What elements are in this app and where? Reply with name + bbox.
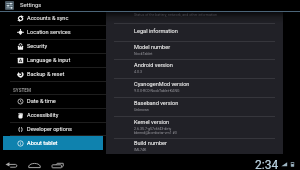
staticText: Developer options xyxy=(27,126,72,133)
button[interactable]: Security xyxy=(3,40,103,53)
button[interactable]: About tablet xyxy=(3,136,103,150)
staticText: Security xyxy=(27,43,48,50)
button[interactable]: CyanogenMod version xyxy=(106,79,283,97)
staticText: Accessibility xyxy=(27,112,59,119)
staticText: Date & time xyxy=(27,98,56,105)
staticText: 9.0.0-RC0-NookTablet-KANG xyxy=(134,89,180,93)
button[interactable]: Location services xyxy=(3,26,103,39)
button[interactable]: Developer options xyxy=(3,123,103,135)
staticText: Status of the battery, network, and othe… xyxy=(134,13,217,17)
staticText: Location services xyxy=(27,29,71,36)
staticText: Legal information xyxy=(134,28,178,35)
staticText: Model number xyxy=(134,44,171,51)
staticText: Settings xyxy=(20,2,42,9)
staticText: Backup & reset xyxy=(27,71,65,78)
button[interactable]: Date & time xyxy=(3,95,103,108)
staticText: Language & input xyxy=(27,57,71,64)
staticText: 2.6.35.7-g57c6f43-dirty bbrend@bombstar-… xyxy=(134,127,177,135)
button[interactable]: Home xyxy=(28,160,41,170)
button[interactable]: Model number xyxy=(106,42,283,59)
button[interactable]: Android version xyxy=(106,60,283,78)
button[interactable]: Back xyxy=(5,160,18,170)
staticText: About tablet xyxy=(27,140,58,147)
staticText: Unknown xyxy=(134,108,149,112)
staticText: Baseband version xyxy=(134,100,179,107)
staticText: 4.0.3 xyxy=(134,70,142,74)
button[interactable]: Accessibility xyxy=(3,109,103,122)
button[interactable]: Backup & reset xyxy=(3,68,103,81)
button[interactable]: Recent apps xyxy=(51,160,64,170)
button[interactable]: Language & input xyxy=(3,54,103,67)
staticText: Accounts & sync xyxy=(27,15,69,22)
staticText: NookTablet xyxy=(134,52,153,56)
button[interactable]: Legal information xyxy=(106,24,283,41)
staticText: Android version xyxy=(134,62,173,69)
staticText: SYSTEM xyxy=(13,88,31,93)
button[interactable]: Settings app xyxy=(5,1,14,10)
button[interactable]: Build number xyxy=(106,139,283,154)
staticText: CyanogenMod version xyxy=(134,81,190,88)
button[interactable]: Baseband version xyxy=(106,98,283,116)
staticText: Kernel version xyxy=(134,119,170,126)
staticText: IML74K xyxy=(134,148,147,152)
button[interactable]: Accounts & sync xyxy=(3,12,103,25)
button[interactable]: Kernel version xyxy=(106,117,283,138)
staticText: Build number xyxy=(134,140,167,147)
staticText: 2:34 xyxy=(255,158,279,170)
